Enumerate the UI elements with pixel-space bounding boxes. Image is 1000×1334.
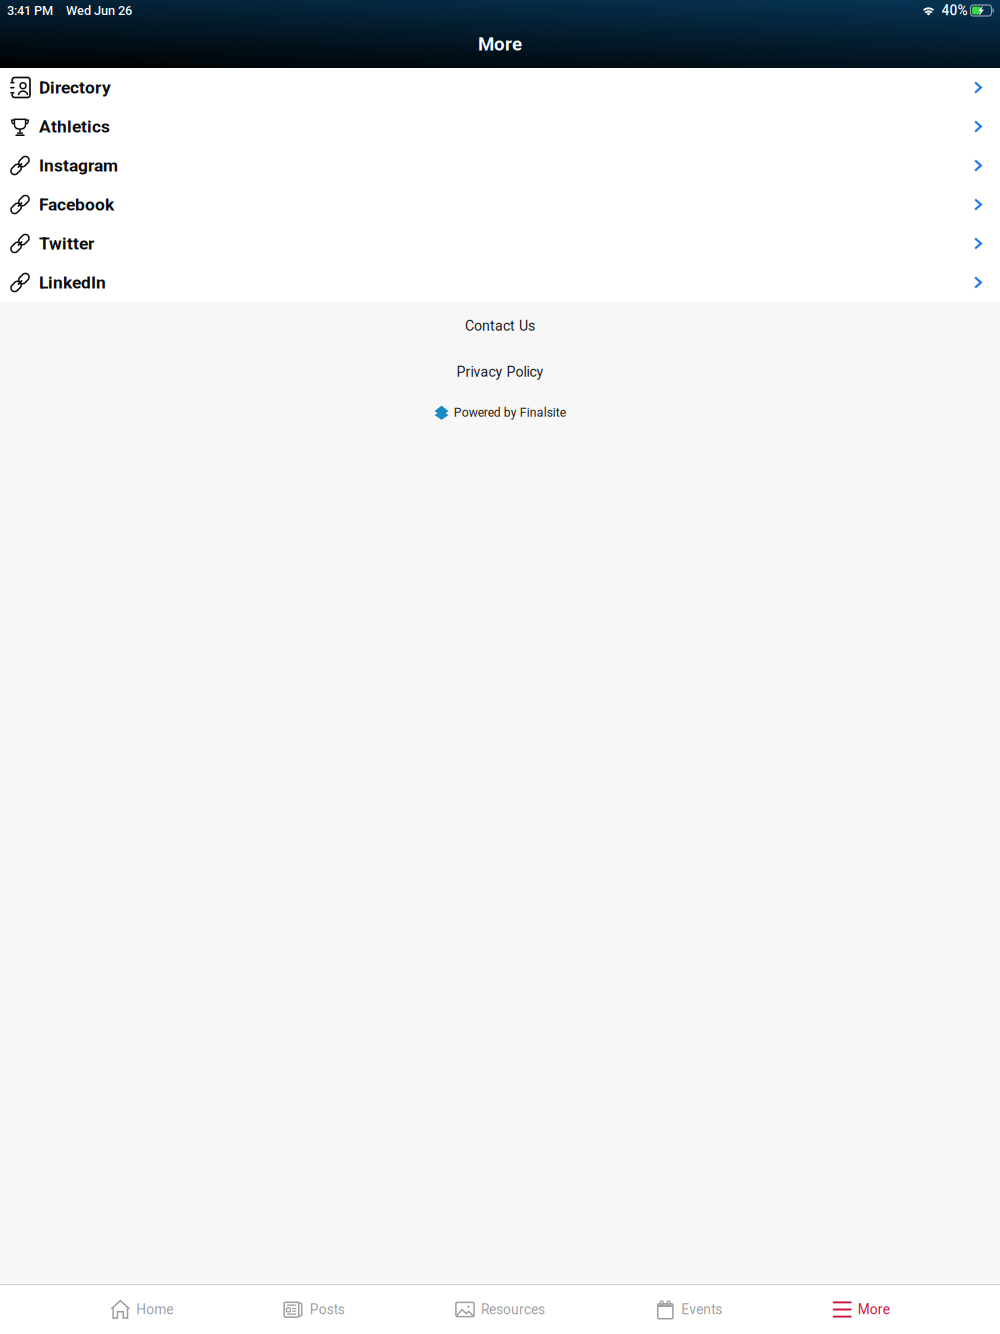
staticText: More [478,33,522,55]
staticText: LinkedIn [39,272,106,293]
staticText: Athletics [39,116,110,137]
button[interactable]: Events [655,1287,722,1331]
staticText: Events [681,1301,722,1318]
staticText: Wed Jun 26 [66,3,132,18]
staticText: Contact Us [465,318,535,334]
staticText: Privacy Policy [456,364,543,380]
button[interactable]: Posts [284,1287,345,1331]
button[interactable]: Home [110,1287,173,1331]
staticText: Posts [310,1301,345,1318]
staticText: Home [136,1301,173,1318]
button[interactable]: More [833,1287,890,1331]
button[interactable]: Powered by Finalsite [0,394,1000,431]
staticText: Facebook [39,194,114,215]
staticText: Directory [39,77,111,98]
button[interactable]: Athletics [0,107,1000,146]
staticText: More [858,1301,890,1318]
button[interactable]: Twitter [0,224,1000,263]
button[interactable]: Facebook [0,185,1000,224]
button[interactable]: LinkedIn [0,263,1000,302]
staticText: Resources [481,1301,545,1318]
button[interactable]: Privacy Policy [0,350,1000,394]
button[interactable]: Directory [0,68,1000,107]
button[interactable]: Instagram [0,146,1000,185]
staticText: 3:41 PM [7,3,53,18]
staticText: 40% [941,2,967,19]
button[interactable]: Contact Us [0,302,1000,350]
staticText: Powered by Finalsite [454,405,566,420]
button[interactable]: Resources [455,1287,545,1331]
staticText: Twitter [39,233,94,254]
staticText: Instagram [39,155,118,176]
